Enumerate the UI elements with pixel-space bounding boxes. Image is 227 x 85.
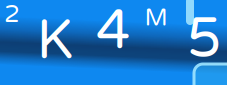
staticText: 5 [187, 6, 221, 72]
staticText: K [36, 8, 73, 74]
staticText: M [144, 4, 167, 32]
staticText: 4 [96, 0, 130, 64]
staticText: 2 [4, 0, 20, 29]
